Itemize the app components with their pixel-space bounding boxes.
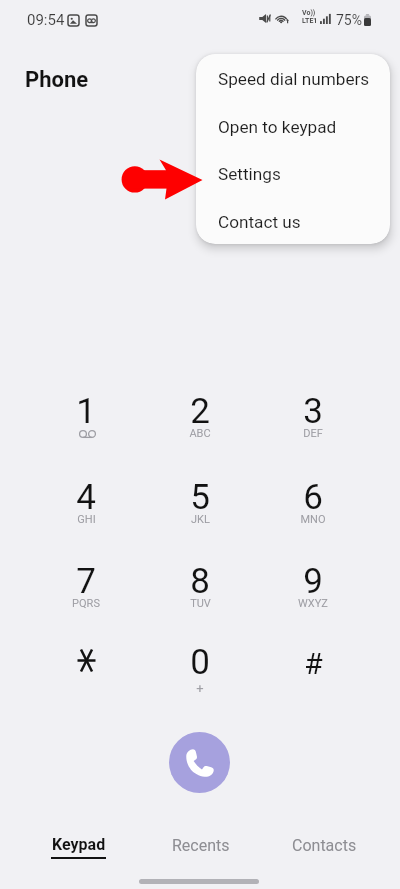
button[interactable]: Open to keypad (196, 103, 390, 151)
staticText: 09:54 (27, 11, 65, 29)
button[interactable]: Keypad (21, 823, 135, 871)
staticText: 8 (190, 561, 210, 601)
button[interactable]: 4 (44, 468, 128, 530)
staticText: Recents (172, 836, 230, 855)
button[interactable]: 8 (158, 552, 242, 614)
staticText: Speed dial numbers (218, 69, 370, 89)
staticText: Phone (25, 67, 89, 93)
button[interactable]: 1 (44, 382, 128, 444)
staticText: ABC (189, 427, 211, 440)
button[interactable]: 0 (158, 633, 242, 695)
button[interactable]: Speed dial numbers (196, 55, 390, 103)
staticText: WXYZ (298, 597, 328, 610)
staticText: 4 (76, 477, 96, 517)
staticText: Contact us (218, 212, 301, 232)
staticText: MNO (300, 513, 326, 526)
staticText: DEF (303, 427, 323, 440)
staticText: Vo)) (302, 9, 316, 17)
staticText: PQRS (72, 597, 100, 610)
button[interactable]: Call (169, 732, 230, 793)
staticText: 2 (190, 391, 210, 431)
staticText: 3 (303, 391, 323, 431)
staticText: 75% (336, 12, 362, 28)
button[interactable]: Contact us (196, 198, 390, 244)
button[interactable]: 7 (44, 552, 128, 614)
staticText: + (196, 681, 204, 696)
staticText: Contacts (292, 836, 357, 855)
button[interactable]: 3 (271, 382, 355, 444)
staticText: JKL (191, 513, 210, 526)
button[interactable]: Recents (144, 823, 258, 871)
staticText: 0 (190, 642, 210, 682)
staticText: GHI (77, 513, 96, 526)
staticText: 1 (76, 391, 96, 431)
button[interactable]: 5 (158, 468, 242, 530)
button[interactable]: Settings (196, 150, 390, 198)
button[interactable]: star (44, 633, 128, 695)
button[interactable]: 6 (271, 468, 355, 530)
staticText: 9 (303, 561, 323, 601)
button[interactable]: 9 (271, 552, 355, 614)
staticText: LTE1 (302, 17, 318, 25)
staticText: TUV (190, 597, 211, 610)
staticText: # (304, 646, 323, 681)
staticText: Open to keypad (218, 117, 337, 137)
button[interactable]: 2 (158, 382, 242, 444)
staticText: 6 (303, 477, 323, 517)
staticText: Keypad (52, 835, 106, 854)
staticText: 7 (76, 561, 96, 601)
button[interactable]: Contacts (267, 823, 381, 871)
button[interactable]: # (271, 633, 355, 695)
staticText: 5 (190, 477, 210, 517)
staticText: Settings (218, 164, 281, 184)
